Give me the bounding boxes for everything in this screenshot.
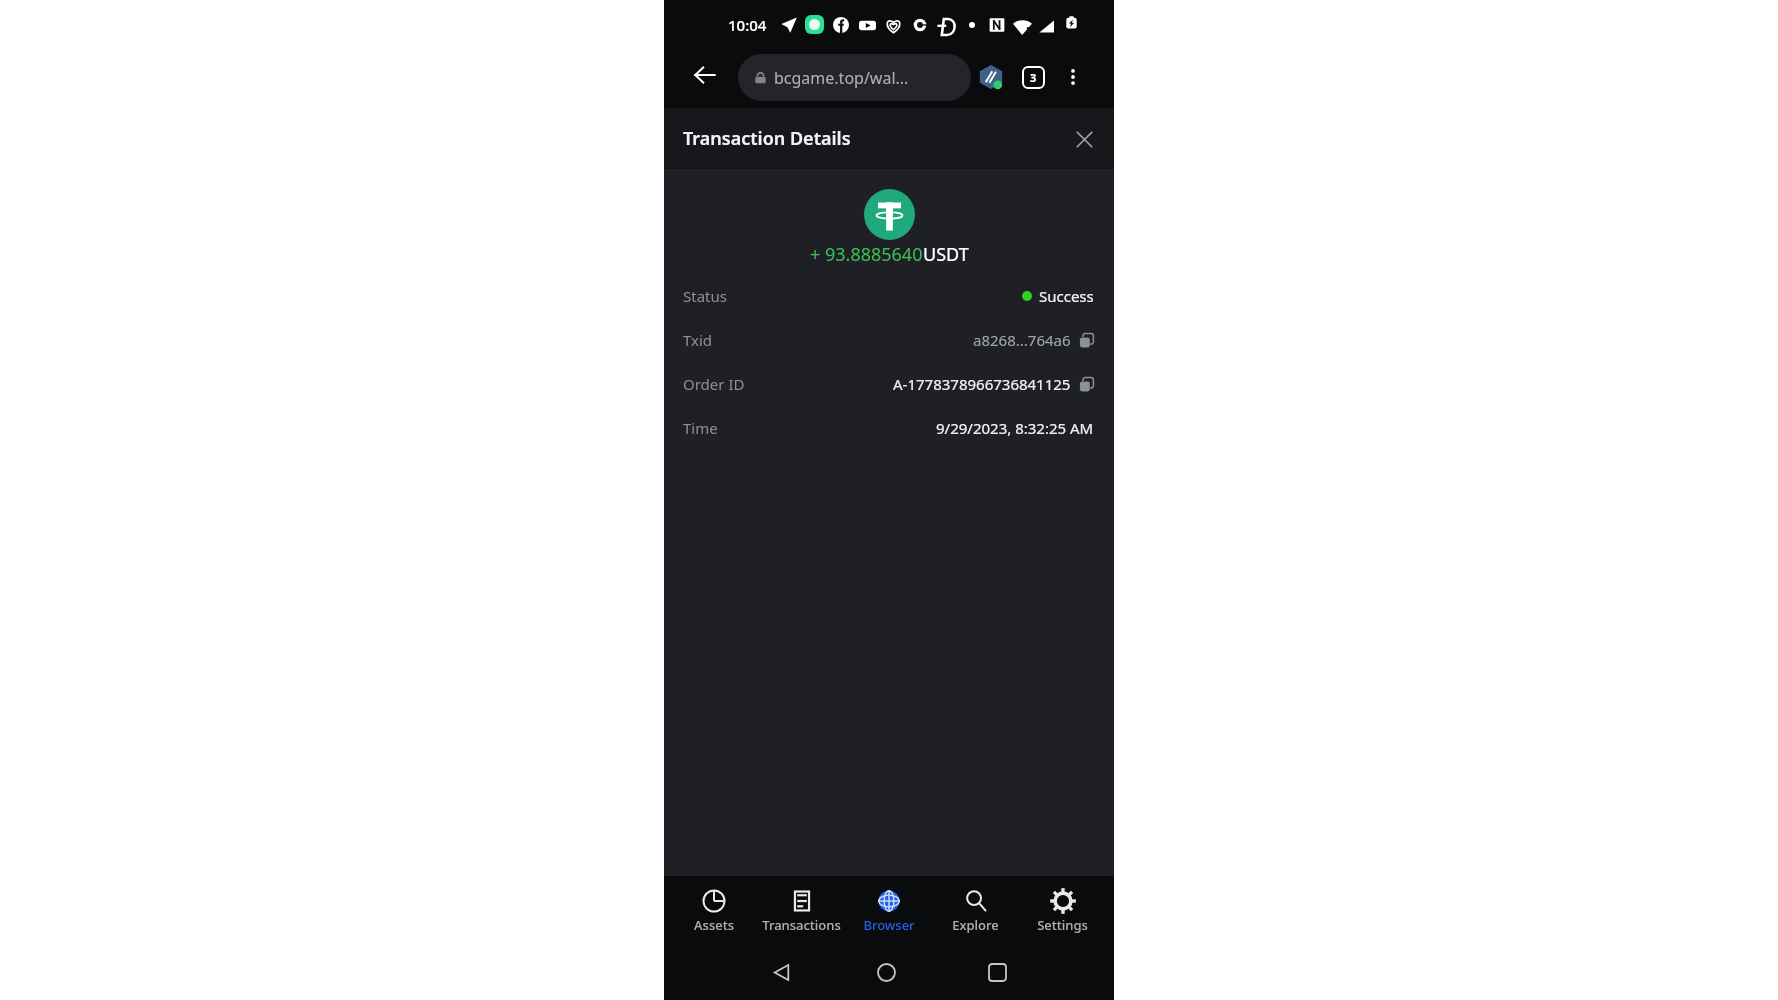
staticText: Transaction Details xyxy=(683,126,851,151)
staticText: Time xyxy=(683,418,718,438)
staticText: 9/29/2023, 8:32:25 AM xyxy=(936,418,1094,438)
staticText: bcgame.top/wal... xyxy=(774,67,909,89)
staticText: 3 xyxy=(1030,70,1037,85)
button[interactable]: Copy Txid xyxy=(1079,333,1094,348)
button[interactable]: More options xyxy=(1056,60,1090,94)
button[interactable]: bcgame.top/wal... xyxy=(738,54,971,101)
button[interactable]: Explore xyxy=(932,876,1019,944)
staticText: 10:04 xyxy=(728,15,767,35)
staticText: a8268...764a6 xyxy=(973,330,1071,350)
staticText: A-1778378966736841125 xyxy=(893,374,1071,394)
staticText: Settings xyxy=(1037,916,1088,934)
staticText: USDT xyxy=(923,242,969,267)
button[interactable]: Back xyxy=(687,59,723,95)
button[interactable]: Extension xyxy=(974,60,1008,94)
button[interactable]: Assets xyxy=(670,876,758,944)
staticText: Status xyxy=(683,286,727,306)
button[interactable]: Recents xyxy=(980,955,1014,989)
button[interactable]: Close xyxy=(1064,120,1100,156)
staticText: + 93.8885640 xyxy=(810,242,923,267)
button[interactable]: Home xyxy=(869,955,903,989)
button[interactable]: Transactions xyxy=(758,876,845,944)
staticText: Order ID xyxy=(683,374,745,394)
staticText: Explore xyxy=(952,916,999,934)
button[interactable]: Back xyxy=(764,955,798,989)
button[interactable]: Copy Order ID xyxy=(1079,377,1094,392)
staticText: Success xyxy=(1039,286,1094,306)
staticText: Transactions xyxy=(762,916,841,934)
button[interactable]: Settings xyxy=(1019,876,1106,944)
button[interactable]: Browser xyxy=(845,876,932,944)
staticText: Assets xyxy=(694,916,734,934)
staticText: Browser xyxy=(863,916,915,934)
staticText: Txid xyxy=(683,330,713,350)
button[interactable]: Tabs xyxy=(1016,60,1050,94)
